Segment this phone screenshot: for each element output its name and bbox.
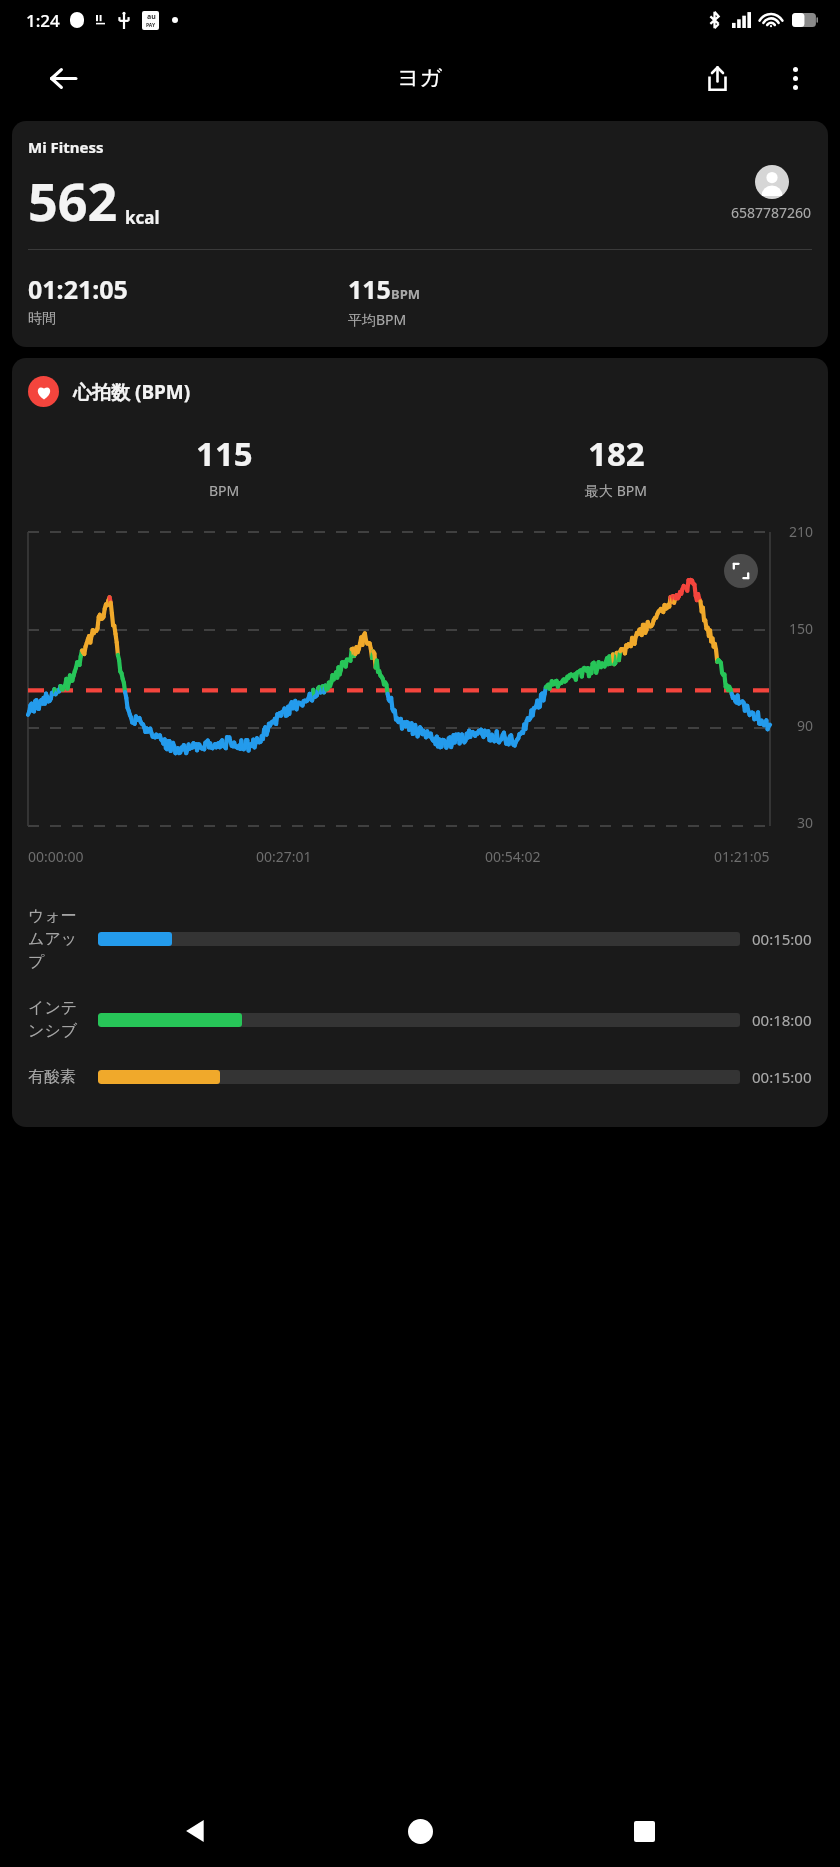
button[interactable]: Recent apps <box>616 1803 672 1859</box>
staticText: BPM <box>209 481 240 500</box>
staticText: 時間 <box>28 310 56 328</box>
staticText: 562 <box>28 165 118 236</box>
staticText: ウォームアップ <box>28 906 84 972</box>
staticText: 00:15:00 <box>752 1067 812 1087</box>
staticText: 182 <box>588 431 645 476</box>
staticText: 00:54:02 <box>485 847 541 866</box>
staticText: 平均BPM <box>348 310 407 329</box>
staticText: 最大 BPM <box>585 481 647 500</box>
button[interactable]: Back <box>168 1803 224 1859</box>
staticText: 有酸素 <box>28 1067 76 1087</box>
button[interactable]: Share <box>694 55 740 101</box>
staticText: 01:21:05 <box>28 272 128 306</box>
staticText: 115 <box>348 272 391 306</box>
staticText: 01:21:05 <box>714 847 770 866</box>
staticText: BPM <box>391 285 420 303</box>
staticText: 150 <box>789 619 814 638</box>
staticText: 90 <box>797 716 814 735</box>
staticText: 6587787260 <box>731 203 812 222</box>
staticText: 210 <box>789 522 814 541</box>
staticText: 00:00:00 <box>28 847 84 866</box>
button[interactable]: Expand chart <box>724 554 758 588</box>
staticText: PAY <box>146 22 156 29</box>
staticText: 115 <box>196 431 253 476</box>
button[interactable]: Back <box>40 55 86 101</box>
staticText: 00:15:00 <box>752 929 812 949</box>
staticText: Mi Fitness <box>28 137 104 157</box>
staticText: 1:24 <box>26 9 60 32</box>
staticText: au <box>147 12 156 22</box>
staticText: kcal <box>125 206 160 229</box>
staticText: 00:27:01 <box>256 847 312 866</box>
staticText: ヨガ <box>397 64 443 92</box>
staticText: 00:18:00 <box>752 1010 812 1030</box>
button[interactable]: Mi Fitness <box>12 121 828 347</box>
button[interactable]: Home <box>392 1803 448 1859</box>
staticText: 30 <box>797 813 814 832</box>
button[interactable]: More options <box>772 55 818 101</box>
staticText: インテンシブ <box>28 998 84 1041</box>
button[interactable]: 心拍数 (BPM) <box>12 358 828 1127</box>
staticText: 心拍数 (BPM) <box>73 379 191 405</box>
